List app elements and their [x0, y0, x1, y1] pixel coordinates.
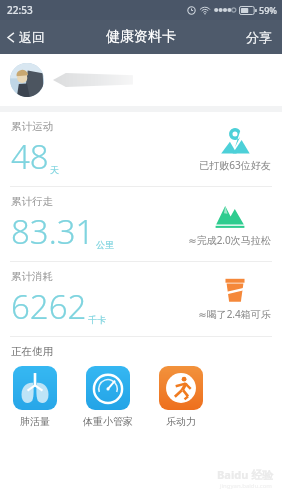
- staticText: 公里: [96, 239, 114, 250]
- staticText: ≈完成2.0次马拉松: [188, 233, 271, 247]
- staticText: 返回: [19, 29, 45, 45]
- staticText: ≈喝了2.4箱可乐: [198, 307, 271, 321]
- staticText: 体重小管家: [83, 415, 133, 428]
- staticText: 乐动力: [166, 415, 196, 428]
- button[interactable]: 累计行走: [0, 187, 282, 261]
- staticText: 22:53: [7, 3, 33, 17]
- staticText: 48: [11, 134, 49, 179]
- staticText: 正在使用: [11, 345, 53, 358]
- button[interactable]: 体重小管家: [81, 364, 135, 430]
- button[interactable]: 累计消耗: [0, 262, 282, 336]
- staticText: 6262: [11, 284, 87, 329]
- staticText: 天: [50, 164, 59, 175]
- button[interactable]: 分享: [236, 23, 282, 51]
- staticText: 59%: [259, 4, 277, 16]
- button[interactable]: 肺活量: [11, 364, 59, 430]
- staticText: 累计运动: [11, 120, 53, 133]
- staticText: Baidu 经验: [217, 467, 274, 482]
- button[interactable]: 累计运动: [0, 112, 282, 186]
- button[interactable]: 返回: [0, 25, 55, 49]
- staticText: 已打败63位好友: [199, 158, 271, 172]
- staticText: 分享: [246, 29, 272, 45]
- staticText: 累计行走: [11, 195, 53, 208]
- button[interactable]: [0, 54, 282, 106]
- staticText: 健康资料卡: [106, 28, 176, 46]
- button[interactable]: 乐动力: [157, 364, 205, 430]
- staticText: jingyan.baidu.com: [220, 482, 272, 490]
- staticText: 千卡: [88, 314, 106, 325]
- staticText: 累计消耗: [11, 270, 53, 283]
- staticText: 肺活量: [20, 415, 50, 428]
- staticText: 83.31: [11, 209, 95, 254]
